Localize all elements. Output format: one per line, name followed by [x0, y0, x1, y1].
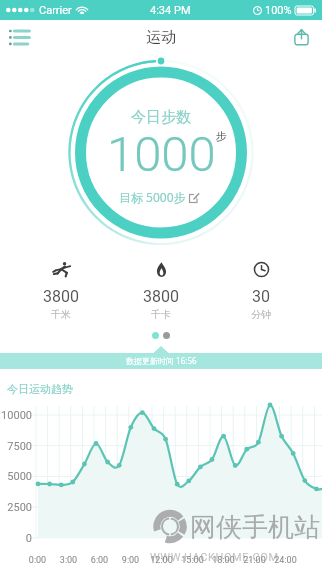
staticText: 3800: [143, 287, 179, 306]
staticText: 3800: [43, 287, 79, 306]
staticText: 10000: [0, 409, 32, 422]
staticText: 7500: [0, 440, 32, 453]
staticText: 30: [252, 287, 270, 306]
staticText: 0: [0, 532, 32, 545]
staticText: 9:00: [115, 555, 146, 566]
staticText: 0:00: [22, 555, 53, 566]
staticText: 目标 5000步: [119, 189, 186, 205]
staticText: 千米: [51, 308, 71, 321]
staticText: 今日运动趋势: [7, 382, 73, 396]
button[interactable]: Share: [286, 22, 316, 52]
button[interactable]: 目标 5000步: [119, 189, 199, 205]
button[interactable]: 3800: [30, 262, 92, 321]
staticText: 数据更新时间 16:56: [126, 355, 197, 366]
staticText: 6:00: [84, 555, 115, 566]
staticText: 今日步数: [131, 108, 191, 127]
staticText: 5000: [0, 470, 32, 483]
staticText: Carrier: [39, 4, 72, 17]
staticText: 100%: [265, 4, 292, 17]
staticText: 网侠手机站: [190, 511, 320, 544]
button[interactable]: 30: [230, 262, 292, 321]
staticText: 4:34 PM: [150, 4, 191, 17]
staticText: 分钟: [251, 308, 271, 321]
button[interactable]: [163, 332, 170, 339]
staticText: 15:00: [177, 555, 208, 566]
button[interactable]: Menu: [5, 22, 35, 52]
staticText: 千卡: [151, 308, 171, 321]
staticText: 步: [216, 129, 227, 143]
staticText: 18:00: [208, 555, 239, 566]
button[interactable]: 3800: [130, 262, 192, 321]
staticText: 1000: [107, 126, 216, 183]
staticText: 运动: [146, 28, 176, 47]
staticText: 2500: [0, 501, 32, 514]
staticText: 3:00: [53, 555, 84, 566]
staticText: 24:00: [270, 555, 301, 566]
staticText: 21:00: [239, 555, 270, 566]
staticText: 12:00: [146, 555, 177, 566]
staticText: WWW.HACKHOME.COM: [150, 551, 279, 564]
button[interactable]: [152, 332, 159, 339]
